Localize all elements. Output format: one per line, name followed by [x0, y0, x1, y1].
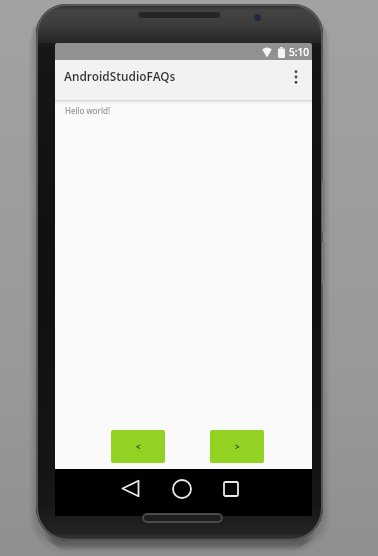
button[interactable] — [286, 60, 312, 100]
button[interactable] — [211, 469, 251, 516]
button[interactable] — [111, 469, 151, 516]
staticText: 5:10 — [289, 45, 309, 59]
staticText: < — [136, 441, 141, 452]
staticText: > — [235, 441, 240, 452]
staticText: Hello world! — [65, 105, 111, 116]
button[interactable]: > — [210, 430, 264, 463]
staticText: AndroidStudioFAQs — [64, 68, 176, 84]
button[interactable]: < — [111, 430, 165, 463]
button[interactable] — [162, 469, 202, 516]
